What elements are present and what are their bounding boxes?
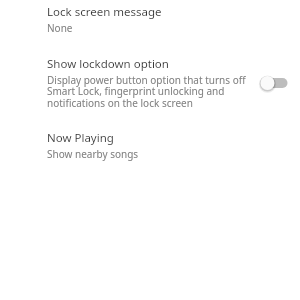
button[interactable]: Now Playing [0, 130, 300, 161]
staticText: Lock screen message [47, 4, 162, 20]
button[interactable]: Show lockdown option toggle [256, 71, 290, 95]
staticText: Show nearby songs [47, 147, 139, 161]
button[interactable]: Show lockdown option [0, 56, 300, 110]
staticText: None [47, 21, 73, 35]
button[interactable]: Lock screen message [0, 0, 300, 35]
staticText: Display power button option that turns o… [47, 73, 250, 110]
staticText: Show lockdown option [47, 56, 169, 72]
staticText: Now Playing [47, 130, 114, 146]
